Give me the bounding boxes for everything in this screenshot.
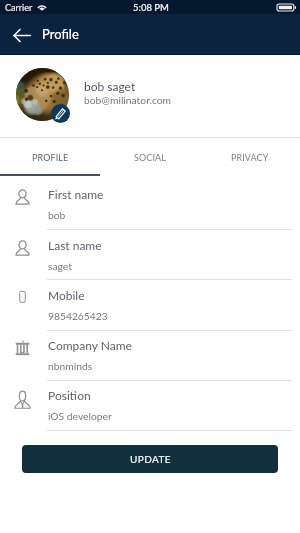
button[interactable] bbox=[0, 280, 300, 331]
button[interactable]: UPDATE bbox=[22, 445, 278, 473]
staticText: bob bbox=[48, 209, 66, 221]
button[interactable] bbox=[0, 175, 300, 230]
button[interactable]: Back bbox=[0, 14, 40, 54]
staticText: Position bbox=[48, 388, 91, 402]
staticText: Last name bbox=[48, 238, 102, 252]
staticText: Company Name bbox=[48, 338, 132, 352]
staticText: saget bbox=[48, 260, 72, 272]
button[interactable] bbox=[0, 230, 300, 281]
button[interactable]: SOCIAL bbox=[100, 138, 200, 175]
button[interactable]: PROFILE bbox=[0, 138, 100, 175]
staticText: Profile bbox=[42, 26, 79, 42]
button[interactable]: PRIVACY bbox=[200, 138, 300, 175]
staticText: SOCIAL bbox=[134, 152, 166, 163]
button[interactable] bbox=[0, 331, 300, 381]
staticText: 5:08 PM bbox=[133, 2, 169, 13]
staticText: 9854265423 bbox=[48, 310, 108, 322]
staticText: First name bbox=[48, 187, 104, 201]
staticText: UPDATE bbox=[130, 453, 171, 465]
staticText: Carrier bbox=[5, 2, 33, 13]
staticText: PROFILE bbox=[32, 152, 69, 163]
button[interactable]: Edit photo bbox=[51, 104, 70, 123]
staticText: nbnminds bbox=[48, 360, 93, 372]
button[interactable] bbox=[0, 381, 300, 431]
staticText: Mobile bbox=[48, 288, 85, 302]
staticText: PRIVACY bbox=[231, 152, 269, 163]
staticText: bob@milinator.com bbox=[84, 94, 172, 106]
staticText: bob saget bbox=[84, 79, 136, 93]
staticText: iOS developer bbox=[48, 410, 112, 422]
